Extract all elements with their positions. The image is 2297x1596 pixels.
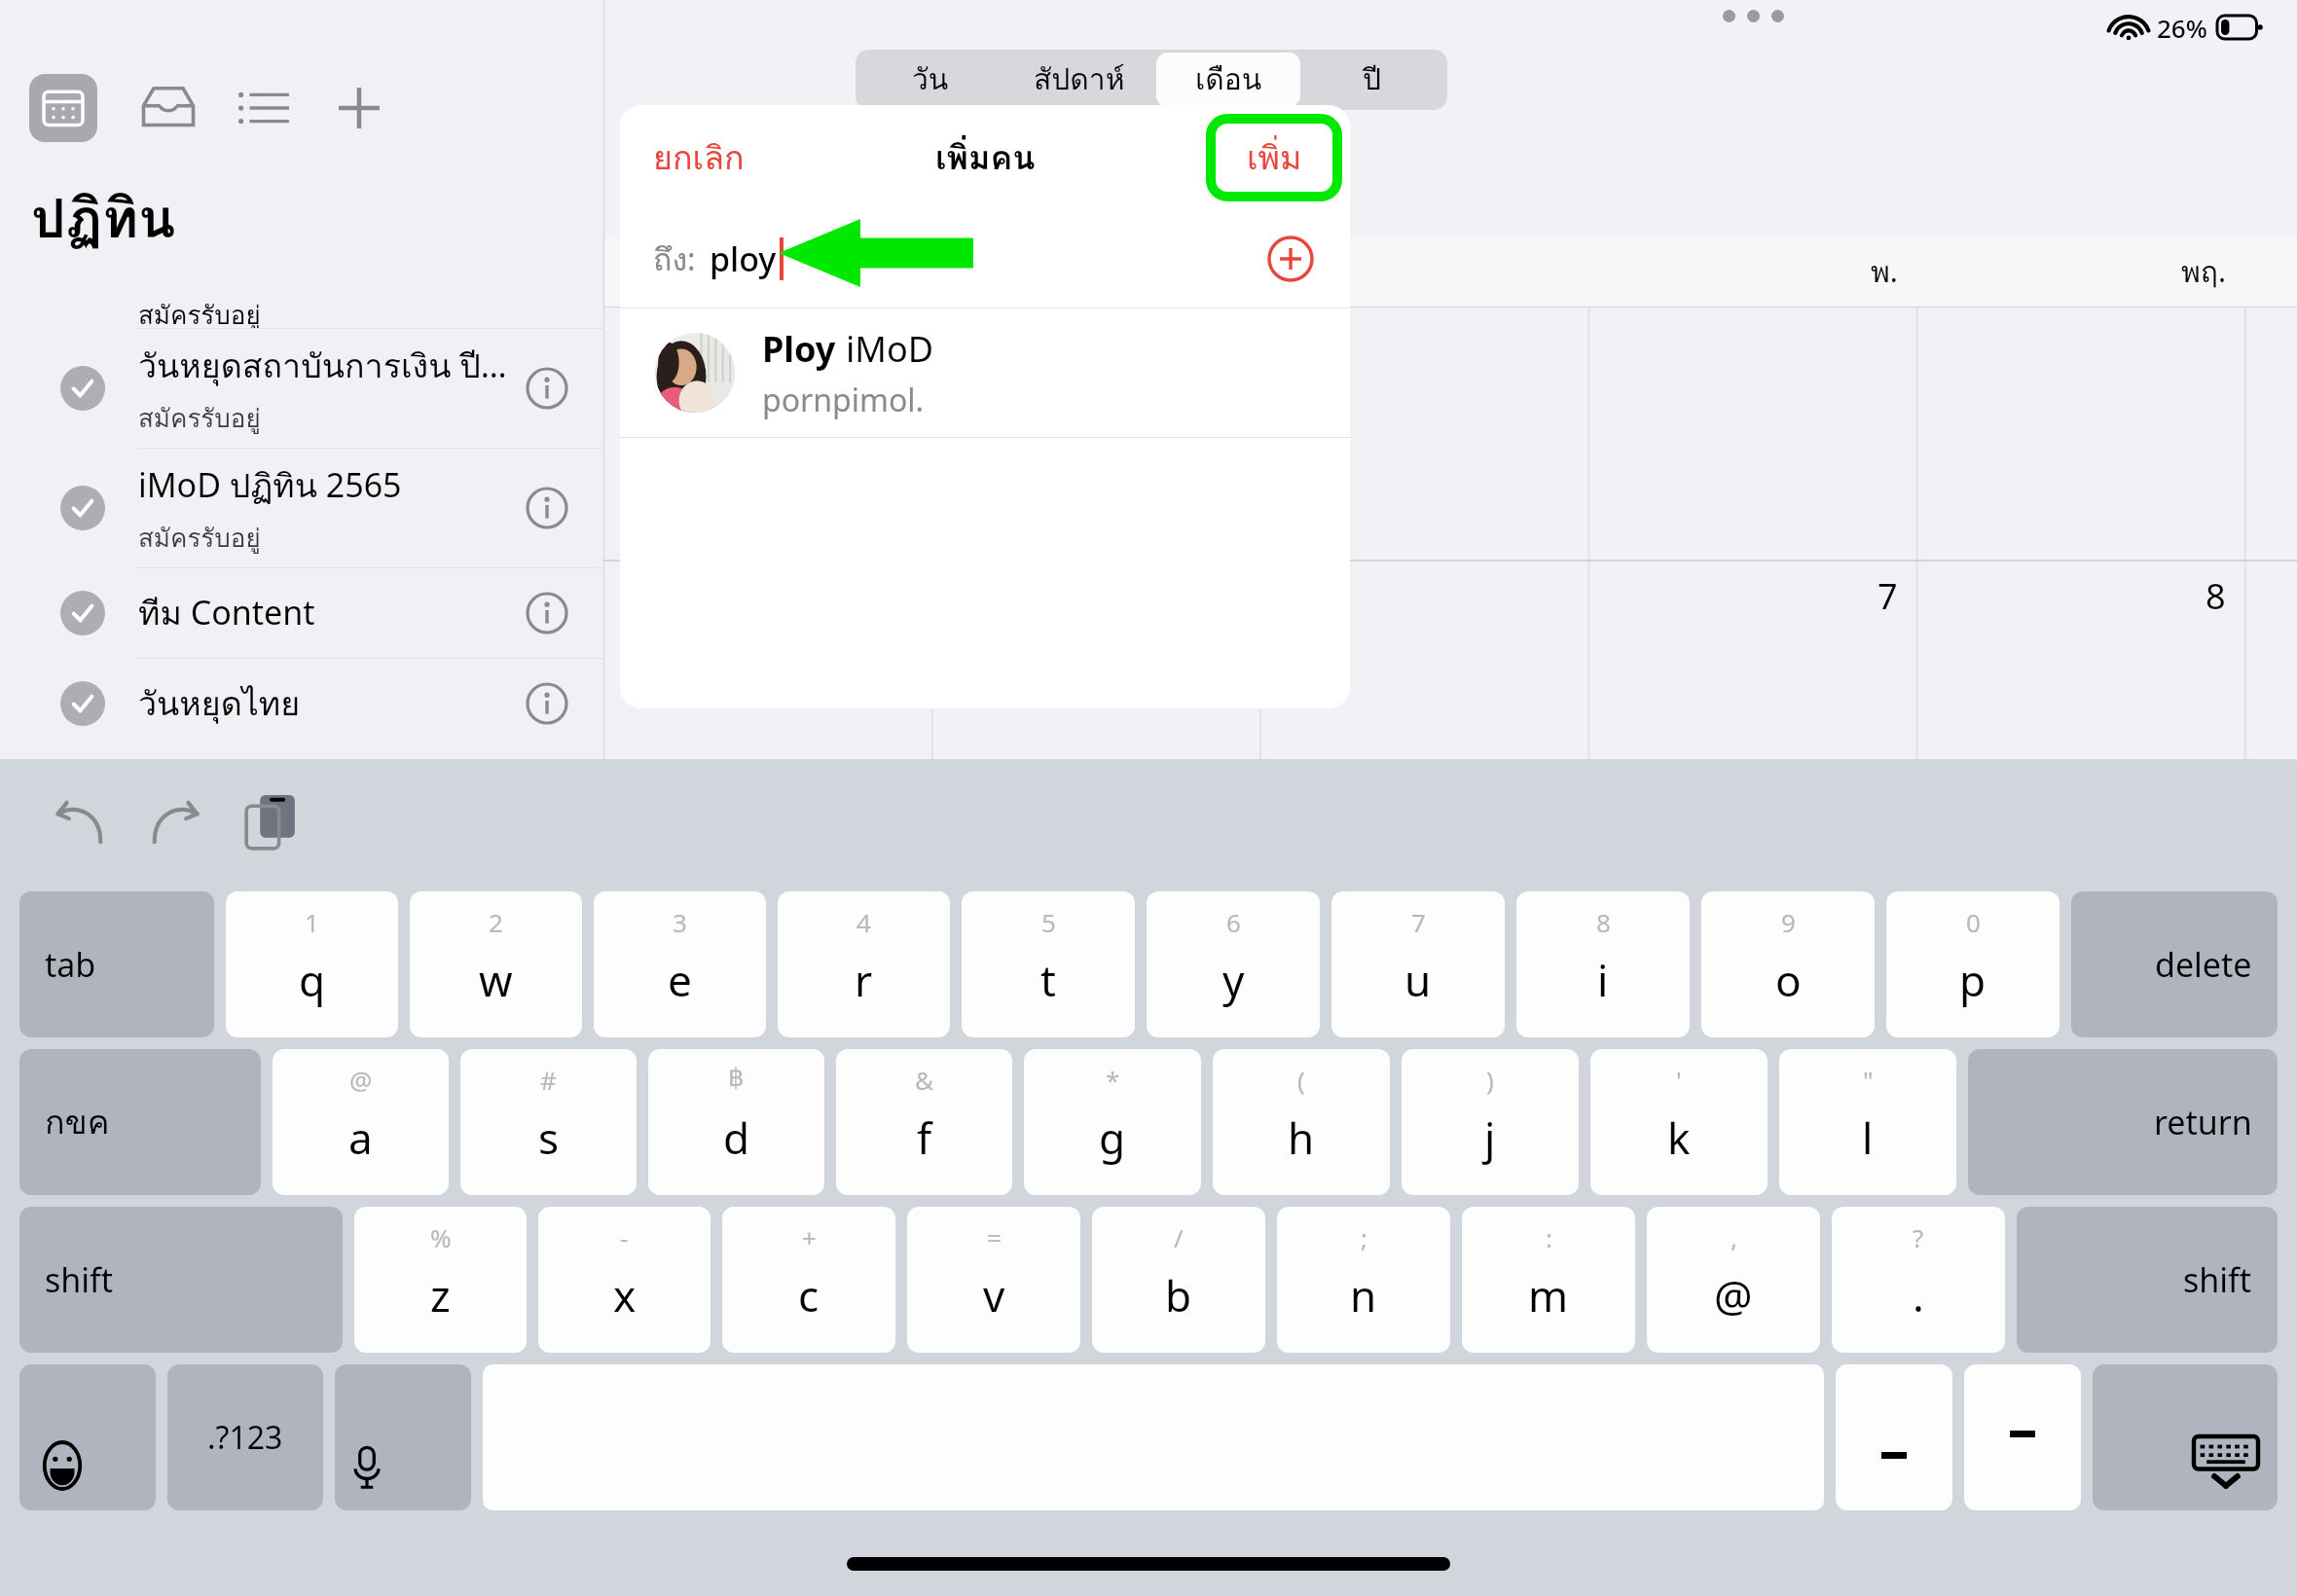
button[interactable]: Redo bbox=[140, 787, 210, 857]
button[interactable]: ปี bbox=[1300, 53, 1444, 107]
staticText: Ploy bbox=[762, 325, 836, 373]
button[interactable]: Undo bbox=[45, 787, 115, 857]
button[interactable]: สัปดาห์ bbox=[1003, 53, 1156, 107]
button[interactable]: Inbox bbox=[134, 74, 202, 142]
staticText: วัน bbox=[912, 56, 949, 103]
button[interactable]: Dictate bbox=[335, 1364, 471, 1510]
staticText: delete bbox=[2155, 942, 2252, 987]
button[interactable]: # bbox=[460, 1049, 637, 1195]
button[interactable]: Space bbox=[483, 1364, 1824, 1510]
button[interactable]: Info bbox=[520, 676, 574, 731]
button[interactable]: Info bbox=[520, 361, 574, 416]
staticText: สมัครรับอยู่ bbox=[138, 518, 261, 558]
staticText: return bbox=[2154, 1100, 2252, 1144]
button[interactable]: ( bbox=[1213, 1049, 1390, 1195]
staticText: สมัครรับอยู่ bbox=[138, 295, 261, 328]
button[interactable]: @ bbox=[273, 1049, 449, 1195]
button[interactable]: % bbox=[354, 1207, 527, 1353]
staticText: * bbox=[1106, 1063, 1120, 1097]
button[interactable]: , bbox=[1647, 1207, 1820, 1353]
staticText: ; bbox=[1361, 1220, 1367, 1254]
button[interactable]: Info bbox=[520, 586, 574, 640]
button[interactable]: Add contact bbox=[1258, 227, 1323, 291]
button[interactable]: iMoD ปฏิทิน 2565 bbox=[0, 449, 603, 567]
button[interactable]: วัน bbox=[858, 53, 1003, 107]
button[interactable]: 6 bbox=[1147, 891, 1320, 1037]
button[interactable]: Hide keyboard bbox=[2093, 1364, 2278, 1510]
staticText: @ bbox=[349, 1063, 373, 1097]
button[interactable]: return bbox=[1968, 1049, 2278, 1195]
button[interactable]: 9 bbox=[1701, 891, 1875, 1037]
button[interactable]: Emoji bbox=[19, 1364, 156, 1510]
staticText: s bbox=[538, 1108, 560, 1167]
button[interactable]: 1 bbox=[226, 891, 398, 1037]
button[interactable]: ฿ bbox=[648, 1049, 824, 1195]
button[interactable]: เดือน bbox=[1156, 53, 1300, 107]
button[interactable]: ' bbox=[1590, 1049, 1768, 1195]
staticText: g bbox=[1099, 1108, 1126, 1167]
button[interactable]: tab bbox=[19, 891, 214, 1037]
staticText: d bbox=[723, 1108, 750, 1167]
staticText: i bbox=[1597, 951, 1609, 1009]
button[interactable]: Ploy bbox=[620, 308, 1350, 437]
staticText: 8 bbox=[1596, 905, 1611, 939]
button[interactable]: ทีม Content bbox=[0, 568, 603, 658]
button[interactable]: " bbox=[1779, 1049, 1956, 1195]
button[interactable]: 5 bbox=[962, 891, 1135, 1037]
staticText: ปฏิทิน bbox=[31, 175, 176, 262]
staticText: 9 bbox=[1781, 905, 1796, 939]
staticText: 4 bbox=[857, 905, 871, 939]
staticText: สมัครรับอยู่ bbox=[138, 398, 261, 438]
staticText: 1 bbox=[305, 905, 319, 939]
button[interactable]: Calendars bbox=[29, 74, 97, 142]
button[interactable]: : bbox=[1462, 1207, 1635, 1353]
button[interactable]: delete bbox=[2071, 891, 2278, 1037]
button[interactable]: List bbox=[230, 74, 298, 142]
button[interactable]: เพิ่ม bbox=[1206, 114, 1342, 201]
staticText: 7 bbox=[1411, 905, 1426, 939]
button[interactable]: Info bbox=[520, 481, 574, 535]
button[interactable]: 4 bbox=[778, 891, 950, 1037]
button[interactable]: & bbox=[836, 1049, 1012, 1195]
staticText: พ. bbox=[1871, 249, 1898, 296]
staticText: r bbox=[855, 951, 873, 1009]
staticText: ' bbox=[1676, 1063, 1682, 1097]
button[interactable] bbox=[1964, 1364, 2081, 1510]
button[interactable]: 7 bbox=[1331, 891, 1505, 1037]
staticText: 2 bbox=[489, 905, 503, 939]
button[interactable]: = bbox=[907, 1207, 1080, 1353]
staticText: h bbox=[1288, 1108, 1315, 1167]
button[interactable]: / bbox=[1092, 1207, 1265, 1353]
staticText: w bbox=[479, 951, 513, 1009]
staticText: e bbox=[668, 951, 692, 1009]
button[interactable]: กขค bbox=[19, 1049, 261, 1195]
button[interactable]: * bbox=[1024, 1049, 1201, 1195]
button[interactable]: ยกเลิก bbox=[653, 131, 745, 184]
staticText: iMoD ปฏิทิน 2565 bbox=[138, 459, 402, 512]
button[interactable] bbox=[1836, 1364, 1952, 1510]
button[interactable]: + bbox=[722, 1207, 895, 1353]
staticText: - bbox=[620, 1220, 629, 1254]
staticText: q bbox=[299, 951, 326, 1009]
staticText: & bbox=[915, 1063, 934, 1097]
button[interactable]: Paste bbox=[236, 787, 306, 857]
button[interactable]: Add bbox=[325, 74, 393, 142]
button[interactable]: วันหยุดไทย bbox=[0, 659, 603, 748]
button[interactable]: 0 bbox=[1886, 891, 2060, 1037]
button[interactable]: shift bbox=[2017, 1207, 2278, 1353]
button[interactable]: วันหยุดสถาบันการเงิน ปี… bbox=[0, 329, 603, 448]
button[interactable]: ? bbox=[1832, 1207, 2005, 1353]
staticText: iMoD bbox=[846, 325, 934, 373]
button[interactable]: shift bbox=[19, 1207, 343, 1353]
button[interactable]: ; bbox=[1277, 1207, 1450, 1353]
button[interactable]: ) bbox=[1402, 1049, 1579, 1195]
button[interactable]: - bbox=[538, 1207, 711, 1353]
button[interactable]: 2 bbox=[410, 891, 582, 1037]
staticText: % bbox=[430, 1220, 452, 1254]
button[interactable]: 3 bbox=[594, 891, 766, 1037]
button[interactable]: .?123 bbox=[167, 1364, 323, 1510]
staticText: , bbox=[1731, 1220, 1737, 1254]
button[interactable]: 8 bbox=[1516, 891, 1690, 1037]
staticText: k bbox=[1667, 1108, 1691, 1167]
